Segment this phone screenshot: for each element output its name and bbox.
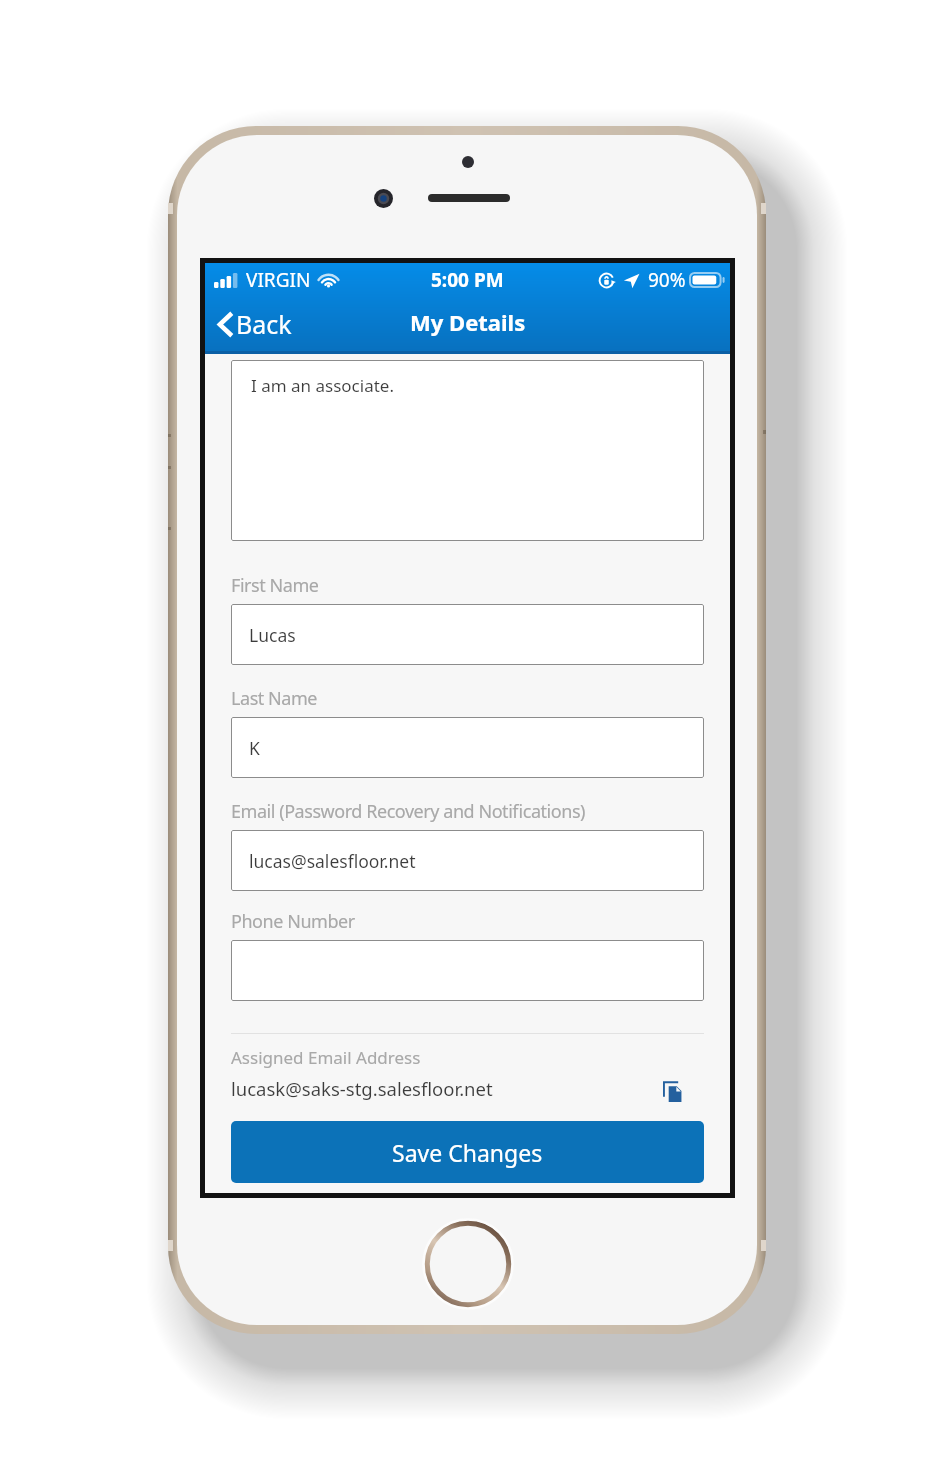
staticText: 5:00 PM	[431, 267, 504, 293]
staticText: I am an associate.	[251, 374, 394, 397]
staticText: Back	[236, 307, 292, 341]
staticText: My Details	[410, 307, 526, 337]
staticText: lucask@saks-stg.salesfloor.net	[231, 1076, 493, 1101]
button[interactable]: I am an associate.	[231, 360, 704, 541]
staticText: Phone Number	[231, 909, 355, 934]
staticText: Email (Password Recovery and Notificatio…	[231, 799, 586, 824]
staticText: VIRGIN	[246, 267, 311, 293]
staticText: Last Name	[231, 686, 318, 711]
button[interactable]: K	[231, 717, 704, 778]
staticText: First Name	[231, 573, 319, 598]
button[interactable]: Save Changes	[231, 1121, 704, 1183]
button[interactable]: Back	[205, 301, 306, 347]
button[interactable]: lucas@salesfloor.net	[231, 830, 704, 891]
button[interactable]	[231, 940, 704, 1001]
staticText: K	[249, 736, 260, 760]
staticText: 90%	[648, 267, 686, 293]
staticText: Assigned Email Address	[231, 1046, 421, 1069]
button[interactable]: Lucas	[231, 604, 704, 665]
button[interactable]: Copy assigned email address	[657, 1073, 704, 1103]
staticText: Save Changes	[392, 1137, 543, 1168]
staticText: lucas@salesfloor.net	[249, 849, 416, 873]
staticText: Lucas	[249, 623, 296, 647]
